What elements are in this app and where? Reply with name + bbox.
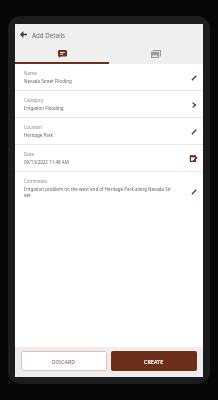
staticText: Irrigation Flooding bbox=[24, 105, 64, 111]
button[interactable]: CREATE bbox=[111, 351, 197, 371]
staticText: DISCARD bbox=[52, 358, 76, 365]
button[interactable]: Name bbox=[15, 64, 203, 91]
staticText: Nevada Street Flloding bbox=[24, 78, 72, 84]
button[interactable]: Details tab bbox=[15, 46, 109, 64]
button[interactable]: Date bbox=[15, 145, 203, 172]
button[interactable]: Photos tab bbox=[109, 46, 203, 64]
staticText: Add Details bbox=[32, 31, 66, 39]
button[interactable]: Location bbox=[15, 118, 203, 145]
staticText: Name bbox=[24, 70, 37, 76]
button[interactable]: Back bbox=[17, 28, 30, 41]
staticText: Heritage Park bbox=[24, 132, 54, 138]
button[interactable]: Category bbox=[15, 91, 203, 118]
staticText: Category bbox=[24, 97, 44, 103]
button[interactable]: Comments bbox=[15, 172, 203, 210]
staticText: Irrigation problem on the west end of He… bbox=[24, 186, 172, 198]
staticText: Location bbox=[24, 124, 43, 130]
staticText: 09/13/2022 11:48 AM bbox=[24, 159, 69, 165]
staticText: Date bbox=[24, 151, 34, 157]
staticText: Comments bbox=[24, 178, 48, 184]
button[interactable]: DISCARD bbox=[21, 351, 107, 371]
staticText: CREATE bbox=[144, 358, 164, 365]
